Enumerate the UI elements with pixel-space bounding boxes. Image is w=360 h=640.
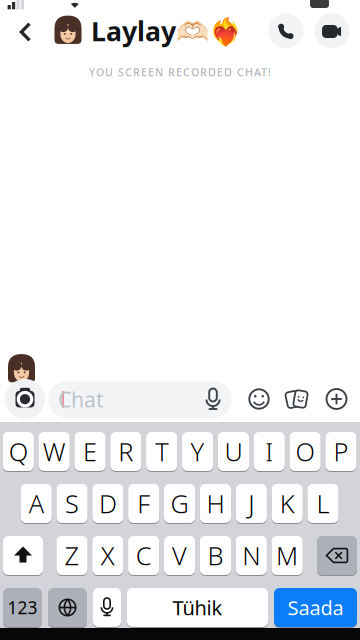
button[interactable]: Dictate xyxy=(93,588,121,627)
staticText: C xyxy=(136,539,152,572)
button[interactable]: X xyxy=(92,536,123,575)
button[interactable]: Q xyxy=(3,432,34,471)
button[interactable]: J xyxy=(236,484,267,523)
button[interactable]: Emoji xyxy=(248,388,270,410)
staticText: J xyxy=(248,487,254,520)
button[interactable]: O xyxy=(289,432,321,471)
button[interactable]: Z xyxy=(56,536,88,575)
button[interactable]: I xyxy=(254,432,285,471)
button[interactable]: Video call xyxy=(314,13,349,48)
staticText: V xyxy=(172,539,187,572)
button[interactable]: U xyxy=(218,432,249,471)
button[interactable]: Space xyxy=(127,588,268,627)
staticText: F xyxy=(137,487,150,520)
staticText: A xyxy=(29,487,44,520)
staticText: Saada xyxy=(287,594,343,621)
staticText: I xyxy=(265,435,273,468)
staticText: E xyxy=(83,435,97,468)
staticText: T xyxy=(155,435,168,468)
button[interactable]: S xyxy=(56,484,88,523)
staticText: X xyxy=(101,539,115,572)
button[interactable]: Send xyxy=(274,588,357,627)
staticText: M xyxy=(276,539,298,572)
staticText: Z xyxy=(64,539,79,572)
staticText: H xyxy=(206,487,224,520)
button[interactable]: Stickers xyxy=(284,387,310,411)
button[interactable]: V xyxy=(164,536,195,575)
button[interactable]: H xyxy=(200,484,231,523)
staticText: Y xyxy=(190,435,204,468)
button[interactable]: Numbers xyxy=(3,588,42,627)
button[interactable]: Chat xyxy=(48,381,232,418)
button[interactable]: R xyxy=(110,432,141,471)
button[interactable]: C xyxy=(128,536,159,575)
button[interactable]: B xyxy=(200,536,231,575)
button[interactable]: T xyxy=(146,432,177,471)
button[interactable]: Laylay profile xyxy=(53,11,283,51)
button[interactable]: Camera xyxy=(5,379,45,419)
button[interactable]: P xyxy=(325,432,357,471)
button[interactable]: Delete xyxy=(317,536,357,575)
button[interactable]: G xyxy=(164,484,195,523)
staticText: R xyxy=(118,435,133,468)
button[interactable]: M xyxy=(271,536,303,575)
button[interactable]: More xyxy=(325,387,348,410)
staticText: D xyxy=(99,487,117,520)
button[interactable]: Next keyboard xyxy=(48,588,87,627)
staticText: 123 xyxy=(7,596,37,619)
staticText: U xyxy=(224,435,242,468)
staticText: N xyxy=(242,539,260,572)
button[interactable]: E xyxy=(74,432,106,471)
staticText: K xyxy=(280,487,295,520)
staticText: W xyxy=(43,435,66,468)
button[interactable]: A xyxy=(21,484,52,523)
staticText: P xyxy=(333,435,348,468)
staticText: G xyxy=(171,487,189,520)
button[interactable]: D xyxy=(92,484,123,523)
button[interactable]: Back xyxy=(8,16,42,48)
button[interactable]: L xyxy=(307,484,339,523)
button[interactable]: Shift xyxy=(3,536,43,575)
button[interactable]: K xyxy=(272,484,303,523)
staticText: YOU SCREEN RECORDED CHAT! xyxy=(89,65,271,79)
staticText: Tühik xyxy=(172,594,222,621)
button[interactable]: Call xyxy=(268,13,303,48)
button[interactable]: Y xyxy=(182,432,213,471)
staticText: L xyxy=(316,487,329,520)
staticText: Chat xyxy=(58,385,104,413)
button[interactable]: W xyxy=(39,432,70,471)
staticText: S xyxy=(65,487,79,520)
staticText: B xyxy=(207,539,223,572)
staticText: Q xyxy=(9,435,28,468)
staticText: Laylay🫶🏻❤️‍🔥 xyxy=(91,13,242,49)
button[interactable]: N xyxy=(236,536,267,575)
button[interactable]: F xyxy=(128,484,159,523)
staticText: O xyxy=(296,435,315,468)
